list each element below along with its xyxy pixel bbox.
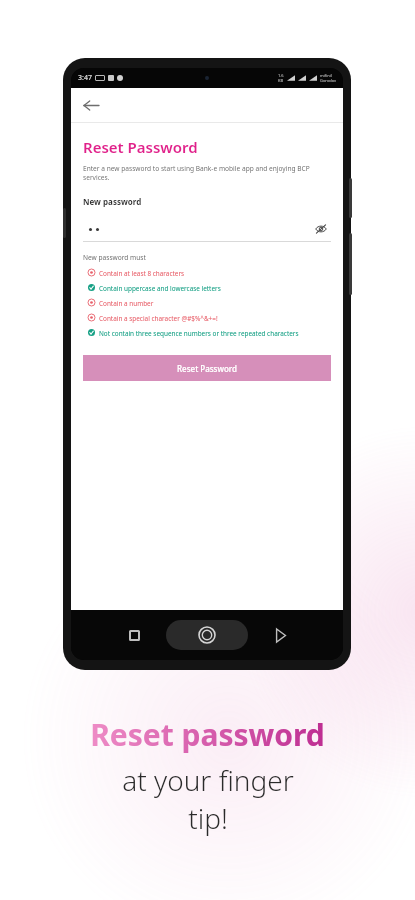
staticText: 1.6 KB — [278, 73, 284, 83]
button[interactable]: Show password — [83, 217, 331, 241]
button[interactable]: Recents — [121, 622, 147, 648]
staticText: Reset Password — [177, 363, 238, 374]
staticText: 3:47 — [78, 73, 92, 83]
staticText: tip! — [188, 799, 228, 837]
staticText: Reset Password — [83, 137, 198, 157]
staticText: Contain a number — [99, 299, 331, 308]
staticText: Not contain three sequence numbers or th… — [99, 329, 331, 338]
button[interactable]: Back — [267, 622, 293, 648]
button[interactable]: Show password — [311, 219, 331, 239]
staticText: at your finger — [122, 761, 294, 799]
staticText: New password — [83, 196, 142, 207]
staticText: New password must — [83, 253, 146, 262]
button[interactable]: Back — [79, 93, 103, 117]
button[interactable]: Reset Password — [83, 355, 331, 381]
staticText: mifinil Gorodov — [320, 73, 337, 83]
button[interactable]: Home — [192, 620, 222, 650]
staticText: Reset password — [90, 714, 325, 755]
staticText: Enter a new password to start using Bank… — [83, 164, 331, 182]
staticText: Contain at least 8 characters — [99, 269, 331, 278]
staticText: Contain uppercase and lowercase letters — [99, 284, 331, 293]
staticText: Contain a special character @#$%^&+=! — [99, 314, 331, 323]
